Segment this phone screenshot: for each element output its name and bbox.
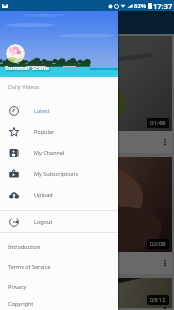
button[interactable]: Logout bbox=[0, 211, 118, 232]
staticText: 02:08 bbox=[150, 240, 166, 248]
button[interactable]: Profile bbox=[6, 44, 25, 63]
button[interactable]: My Subscriptions bbox=[0, 163, 118, 184]
button[interactable]: More options bbox=[158, 252, 172, 274]
button[interactable]: Terms of Service bbox=[0, 256, 118, 276]
button[interactable]: Sunny beach song [MP3] bbox=[2, 131, 172, 153]
staticText: Privacy bbox=[8, 283, 27, 290]
button[interactable]: More options bbox=[158, 131, 172, 153]
staticText: Terms of Service bbox=[8, 263, 51, 270]
staticText: My Subscriptions bbox=[34, 170, 79, 177]
staticText: 01:48 bbox=[150, 119, 166, 127]
staticText: Daily Videos bbox=[8, 83, 40, 90]
button[interactable]: Privacy bbox=[0, 276, 118, 296]
staticText: 03:12 bbox=[150, 296, 166, 304]
staticText: Copyright bbox=[8, 300, 34, 307]
staticText: 17:37 bbox=[153, 1, 173, 11]
staticText: Popular bbox=[34, 128, 55, 135]
staticText: Summer Scene bbox=[5, 64, 50, 72]
button[interactable]: Night market trip [MP3] bbox=[2, 252, 172, 274]
button[interactable]: Popular bbox=[0, 121, 118, 142]
button[interactable]: Introduction bbox=[0, 236, 118, 256]
staticText: Logout bbox=[34, 218, 53, 225]
staticText: Night market trip [MP3] bbox=[7, 258, 158, 268]
staticText: Introduction bbox=[8, 243, 41, 250]
staticText: 62% bbox=[134, 2, 147, 10]
staticText: Upload bbox=[34, 191, 53, 198]
button[interactable]: Copyright bbox=[0, 296, 118, 310]
button[interactable]: My Channel bbox=[0, 142, 118, 163]
staticText: My Channel bbox=[34, 149, 65, 156]
button[interactable]: Latest bbox=[0, 100, 118, 121]
staticText: CATEGORIES bbox=[36, 17, 84, 28]
button[interactable]: Upload bbox=[0, 184, 118, 205]
staticText: Latest bbox=[34, 107, 50, 114]
staticText: Sunny beach song [MP3] bbox=[7, 137, 158, 147]
